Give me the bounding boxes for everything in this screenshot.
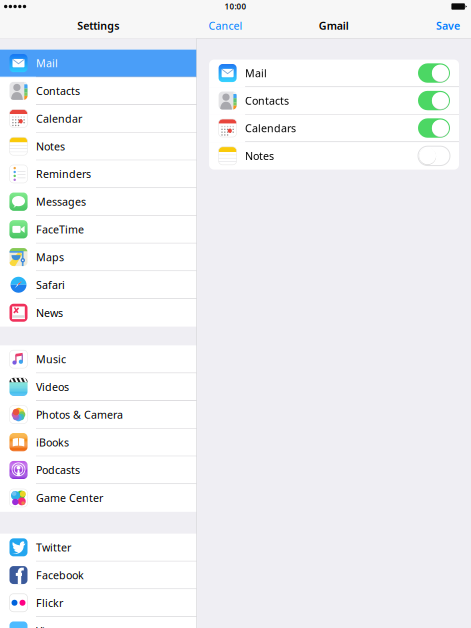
staticText: v (14, 620, 23, 628)
button[interactable]: Photos & Camera (0, 401, 196, 429)
staticText: FaceTime (36, 222, 84, 236)
staticText: Settings (77, 18, 119, 33)
button[interactable]: Reminders (0, 160, 196, 188)
staticText: Vimeo (36, 623, 67, 628)
staticText: Contacts (36, 84, 80, 98)
button[interactable]: Calendars toggle (418, 118, 450, 138)
staticText: iBooks (36, 435, 69, 449)
staticText: Music (36, 352, 66, 366)
button[interactable]: Game Center (0, 484, 196, 512)
staticText: Save (436, 18, 460, 33)
button[interactable]: Music (0, 346, 196, 373)
staticText: Podcasts (36, 463, 80, 477)
button[interactable]: Facebook (0, 561, 196, 589)
staticText: Notes (36, 139, 65, 153)
button[interactable]: Podcasts (0, 456, 196, 484)
button[interactable]: Safari (0, 271, 196, 299)
button[interactable]: v (0, 617, 196, 628)
staticText: Contacts (245, 93, 289, 108)
button[interactable]: Twitter (0, 534, 196, 561)
button[interactable]: Flickr (0, 589, 196, 617)
staticText: Maps (36, 250, 64, 264)
staticText: Twitter (36, 540, 71, 554)
button[interactable]: Calendar (0, 105, 196, 133)
staticText: Messages (36, 195, 86, 209)
button[interactable]: Videos (0, 373, 196, 401)
staticText: Cancel (208, 18, 242, 33)
button[interactable]: Contacts toggle (418, 91, 450, 110)
button[interactable]: Cancel (208, 14, 242, 37)
button[interactable]: Save (436, 14, 460, 37)
button[interactable]: FaceTime (0, 216, 196, 243)
button[interactable]: Notes (0, 133, 196, 160)
button[interactable]: Notes toggle (418, 146, 450, 166)
button[interactable]: iBooks (0, 429, 196, 456)
button[interactable]: Contacts (0, 77, 196, 105)
staticText: Notes (245, 149, 274, 163)
staticText: Facebook (36, 568, 84, 582)
button[interactable]: Mail (0, 50, 196, 77)
staticText: Photos & Camera (36, 407, 123, 422)
staticText: Calendars (245, 121, 296, 135)
staticText: Gmail (319, 18, 349, 33)
staticText: News (36, 306, 63, 320)
staticText: Safari (36, 278, 65, 292)
staticText: Videos (36, 380, 69, 394)
staticText: Mail (36, 56, 58, 70)
button[interactable]: Maps (0, 243, 196, 271)
staticText: 10:00 (224, 1, 246, 12)
button[interactable]: Messages (0, 188, 196, 216)
staticText: Calendar (36, 111, 82, 126)
button[interactable]: Mail toggle (418, 63, 450, 83)
button[interactable]: News (0, 299, 196, 327)
staticText: Reminders (36, 167, 91, 181)
staticText: Game Center (36, 491, 103, 505)
staticText: Flickr (36, 596, 63, 610)
staticText: Mail (245, 66, 267, 80)
